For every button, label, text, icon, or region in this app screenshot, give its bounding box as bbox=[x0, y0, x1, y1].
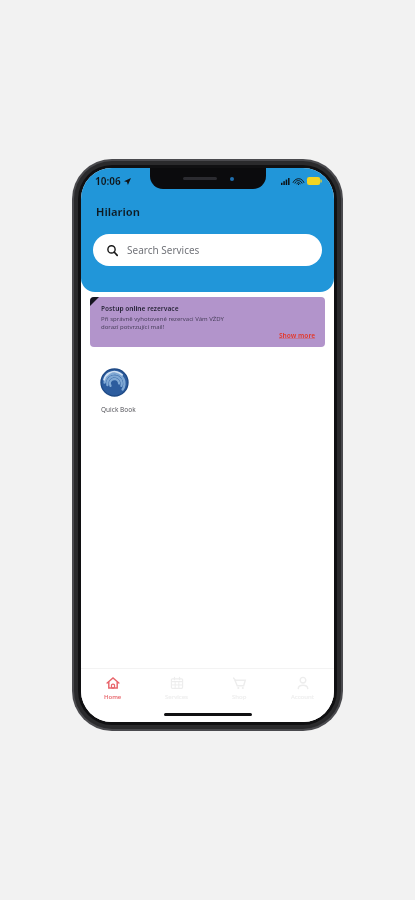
staticText: Shop bbox=[232, 693, 247, 701]
button[interactable]: Home bbox=[81, 669, 145, 707]
staticText: Home bbox=[104, 693, 122, 701]
staticText: Search Services bbox=[127, 243, 200, 257]
staticText: dorazí potvrzující mail! bbox=[101, 323, 165, 331]
button[interactable]: Search Services bbox=[93, 234, 322, 266]
staticText: Services bbox=[165, 693, 188, 701]
button[interactable]: Quick Book bbox=[101, 369, 153, 414]
button[interactable]: Account bbox=[271, 669, 334, 707]
button[interactable]: Services bbox=[145, 669, 208, 707]
staticText: Show more bbox=[279, 331, 316, 340]
staticText: Při správně vyhotovené rezervaci Vám VŽD… bbox=[101, 315, 224, 323]
staticText: Hilarion bbox=[96, 204, 140, 219]
staticText: Postup online rezervace bbox=[101, 304, 179, 313]
button[interactable]: Postup online rezervace bbox=[90, 297, 325, 347]
staticText: Quick Book bbox=[101, 405, 136, 414]
button[interactable]: Show more bbox=[279, 331, 316, 340]
staticText: 10:06 bbox=[95, 174, 121, 188]
staticText: Account bbox=[291, 693, 314, 701]
